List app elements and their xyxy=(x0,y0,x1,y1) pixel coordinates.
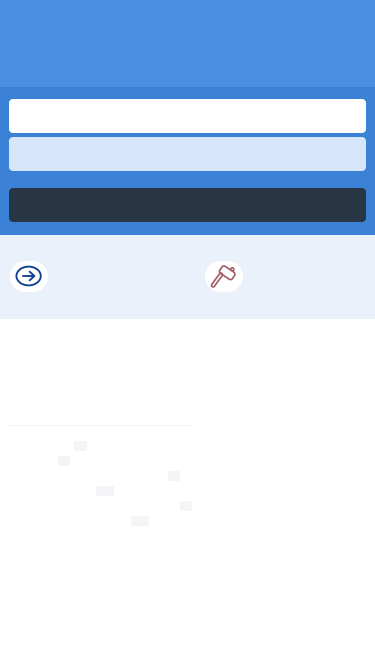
button[interactable] xyxy=(9,99,366,133)
button[interactable] xyxy=(9,137,366,171)
button[interactable] xyxy=(9,188,366,222)
button[interactable]: Continue xyxy=(10,261,48,292)
button[interactable]: Tools xyxy=(205,261,243,292)
